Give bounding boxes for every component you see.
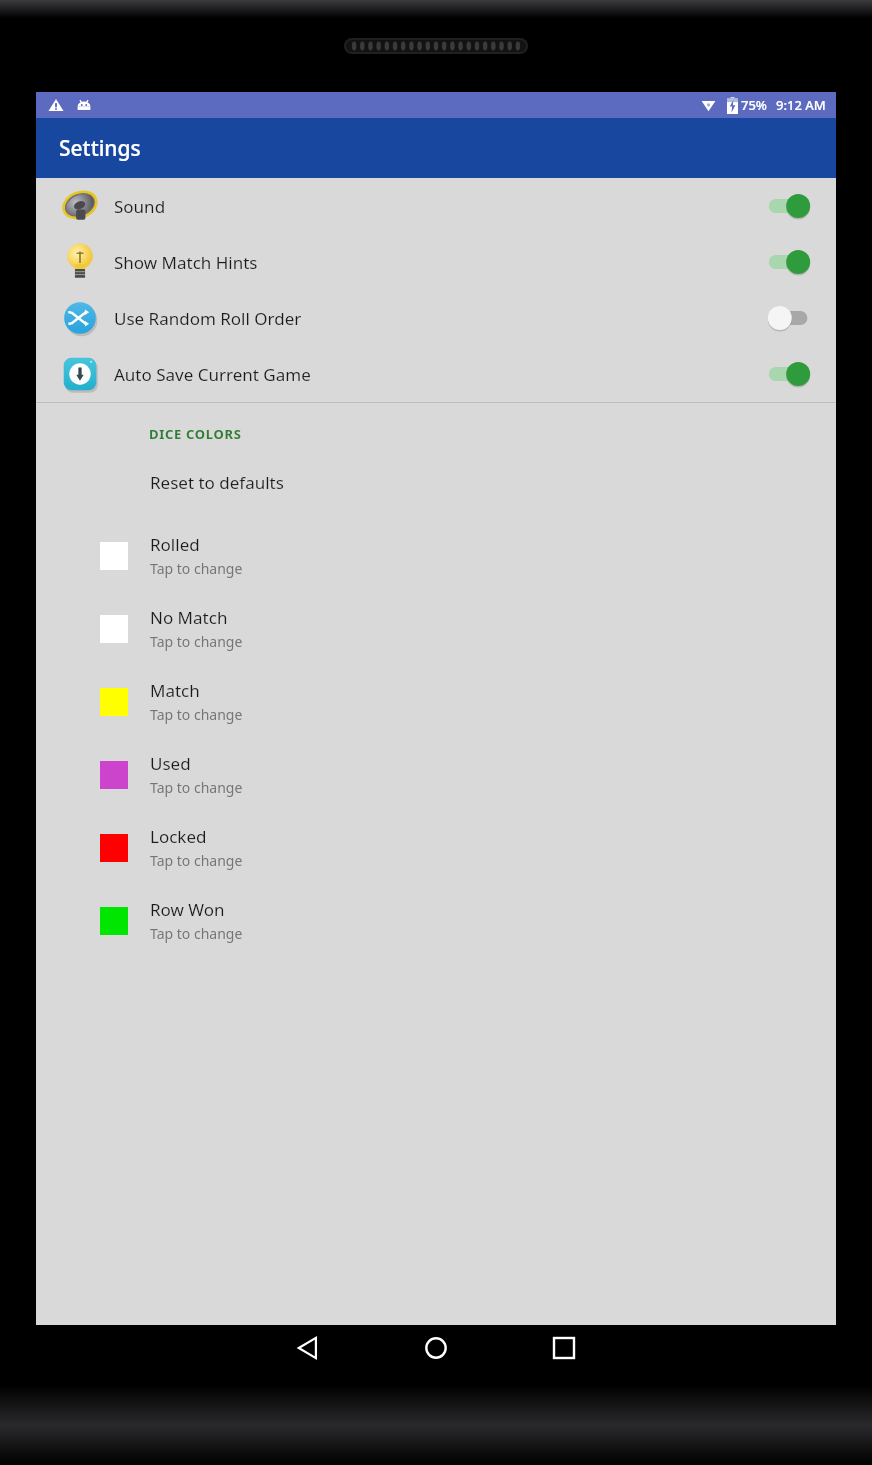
staticText: Reset to defaults: [150, 471, 284, 494]
staticText: Match: [150, 679, 200, 702]
staticText: Used: [150, 752, 191, 775]
button[interactable]: On: [766, 193, 812, 219]
staticText: Tap to change: [150, 705, 243, 724]
staticText: Row Won: [150, 898, 225, 921]
staticText: Sound: [114, 195, 166, 218]
button[interactable]: Reset to defaults: [36, 465, 836, 499]
staticText: Auto Save Current Game: [114, 363, 311, 386]
staticText: Settings: [59, 134, 141, 163]
staticText: Tap to change: [150, 924, 243, 943]
staticText: Tap to change: [150, 559, 243, 578]
button[interactable]: Show Match Hints: [36, 234, 836, 290]
staticText: 9:12 AM: [776, 96, 826, 114]
button[interactable]: Used: [36, 738, 836, 811]
button[interactable]: Rolled: [36, 519, 836, 592]
staticText: DICE COLORS: [149, 425, 242, 443]
button[interactable]: Auto Save Current Game: [36, 346, 836, 402]
button[interactable]: Back: [244, 1325, 372, 1387]
button[interactable]: On: [766, 249, 812, 275]
staticText: Tap to change: [150, 632, 243, 651]
button[interactable]: Home: [372, 1325, 500, 1387]
button[interactable]: Off: [766, 305, 812, 331]
staticText: 75%: [741, 96, 767, 114]
button[interactable]: Match: [36, 665, 836, 738]
button[interactable]: On: [766, 361, 812, 387]
button[interactable]: No Match: [36, 592, 836, 665]
button[interactable]: Locked: [36, 811, 836, 884]
button[interactable]: Recent apps: [500, 1325, 628, 1387]
button[interactable]: Row Won: [36, 884, 836, 957]
staticText: Rolled: [150, 533, 200, 556]
button[interactable]: Sound: [36, 178, 836, 234]
staticText: Tap to change: [150, 851, 243, 870]
staticText: Locked: [150, 825, 207, 848]
staticText: Tap to change: [150, 778, 243, 797]
button[interactable]: Use Random Roll Order: [36, 290, 836, 346]
staticText: Show Match Hints: [114, 251, 258, 274]
staticText: No Match: [150, 606, 228, 629]
staticText: Use Random Roll Order: [114, 307, 302, 330]
